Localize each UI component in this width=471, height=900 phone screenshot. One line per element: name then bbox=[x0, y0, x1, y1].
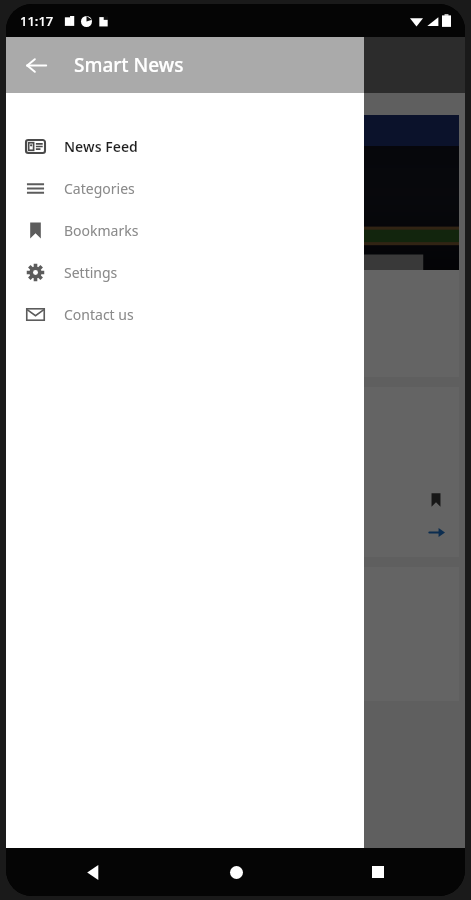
button[interactable]: Back bbox=[16, 45, 56, 85]
staticText: 11:17 bbox=[20, 12, 54, 30]
button[interactable]: Settings bbox=[6, 251, 364, 293]
staticText: Categories bbox=[64, 179, 135, 198]
button[interactable]: Contact us bbox=[6, 293, 364, 335]
staticText: Contact us bbox=[64, 305, 134, 324]
button[interactable]: Home bbox=[219, 855, 253, 889]
staticText: hackeray on bbox=[22, 310, 114, 332]
button[interactable]: News Feed bbox=[6, 125, 364, 167]
button[interactable]: as bbox=[12, 567, 459, 701]
button[interactable]: re bbox=[12, 387, 459, 557]
button[interactable]: Categories bbox=[6, 167, 364, 209]
staticText: We both sell H bbox=[22, 280, 131, 302]
button[interactable]: We both sell H bbox=[12, 115, 459, 377]
staticText: Bookmarks bbox=[64, 221, 139, 240]
button[interactable]: Recents bbox=[361, 855, 395, 889]
button[interactable]: Back bbox=[76, 855, 110, 889]
button[interactable] bbox=[6, 37, 465, 848]
staticText: News Feed bbox=[64, 137, 138, 156]
button[interactable]: Share bbox=[423, 519, 449, 545]
button[interactable]: Bookmarks bbox=[6, 209, 364, 251]
staticText: Smart News bbox=[74, 52, 184, 78]
button[interactable]: Bookmark bbox=[423, 487, 449, 513]
staticText: Settings bbox=[64, 263, 118, 282]
